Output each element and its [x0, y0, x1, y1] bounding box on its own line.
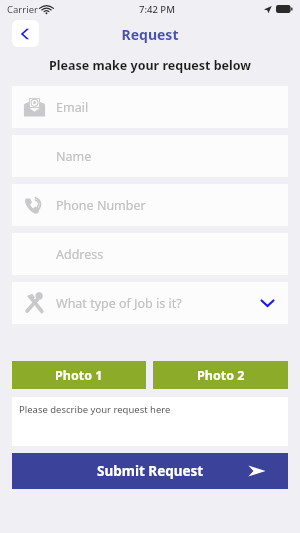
staticText: Please describe your request here: [19, 403, 171, 416]
staticText: Please make your request below: [0, 57, 300, 74]
button[interactable]: Back: [12, 20, 39, 47]
staticText: Address: [56, 246, 104, 263]
staticText: Submit Request: [97, 462, 204, 480]
staticText: Request: [0, 25, 300, 44]
button[interactable]: Address: [12, 233, 288, 275]
staticText: Photo 1: [55, 367, 103, 384]
button[interactable]: Photo 1: [12, 361, 146, 389]
button[interactable]: Photo 2: [153, 361, 288, 389]
button[interactable]: Phone Number: [12, 184, 288, 226]
staticText: Phone Number: [56, 197, 146, 214]
button[interactable]: Name: [12, 135, 288, 177]
staticText: Email: [56, 99, 89, 116]
staticText: Photo 2: [197, 367, 245, 384]
button[interactable]: Please describe your request here: [12, 397, 288, 446]
staticText: 7:42 PM: [139, 3, 175, 16]
staticText: What type of Job is it?: [56, 295, 182, 312]
button[interactable]: What type of Job is it?: [12, 282, 288, 324]
staticText: Carrier: [7, 3, 38, 16]
button[interactable]: Email: [12, 86, 288, 128]
staticText: Name: [56, 148, 92, 165]
button[interactable]: Submit Request: [12, 453, 288, 489]
